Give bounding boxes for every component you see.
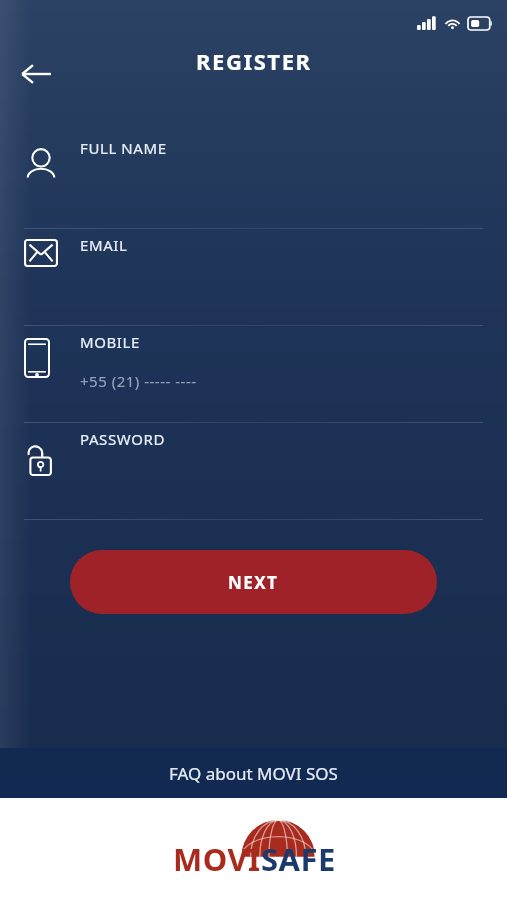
button[interactable]: Back xyxy=(8,46,64,102)
button[interactable]: FAQ about MOVI SOS xyxy=(0,748,507,798)
button[interactable]: EMAIL xyxy=(0,229,507,325)
button[interactable]: NEXT xyxy=(70,550,437,614)
staticText: FAQ about MOVI SOS xyxy=(169,762,338,785)
button[interactable]: FULL NAME xyxy=(0,132,507,228)
staticText: PASSWORD xyxy=(80,429,165,449)
staticText: REGISTER xyxy=(196,46,312,76)
staticText: +55 (21) ----- ---- xyxy=(80,371,197,391)
staticText: NEXT xyxy=(228,571,279,594)
staticText: MOBILE xyxy=(80,332,140,352)
staticText: EMAIL xyxy=(80,235,128,255)
staticText: SAFE xyxy=(261,838,336,880)
staticText: MOVI xyxy=(173,838,261,880)
button[interactable]: MOBILE xyxy=(0,326,507,422)
staticText: FULL NAME xyxy=(80,138,167,158)
button[interactable]: PASSWORD xyxy=(0,423,507,519)
